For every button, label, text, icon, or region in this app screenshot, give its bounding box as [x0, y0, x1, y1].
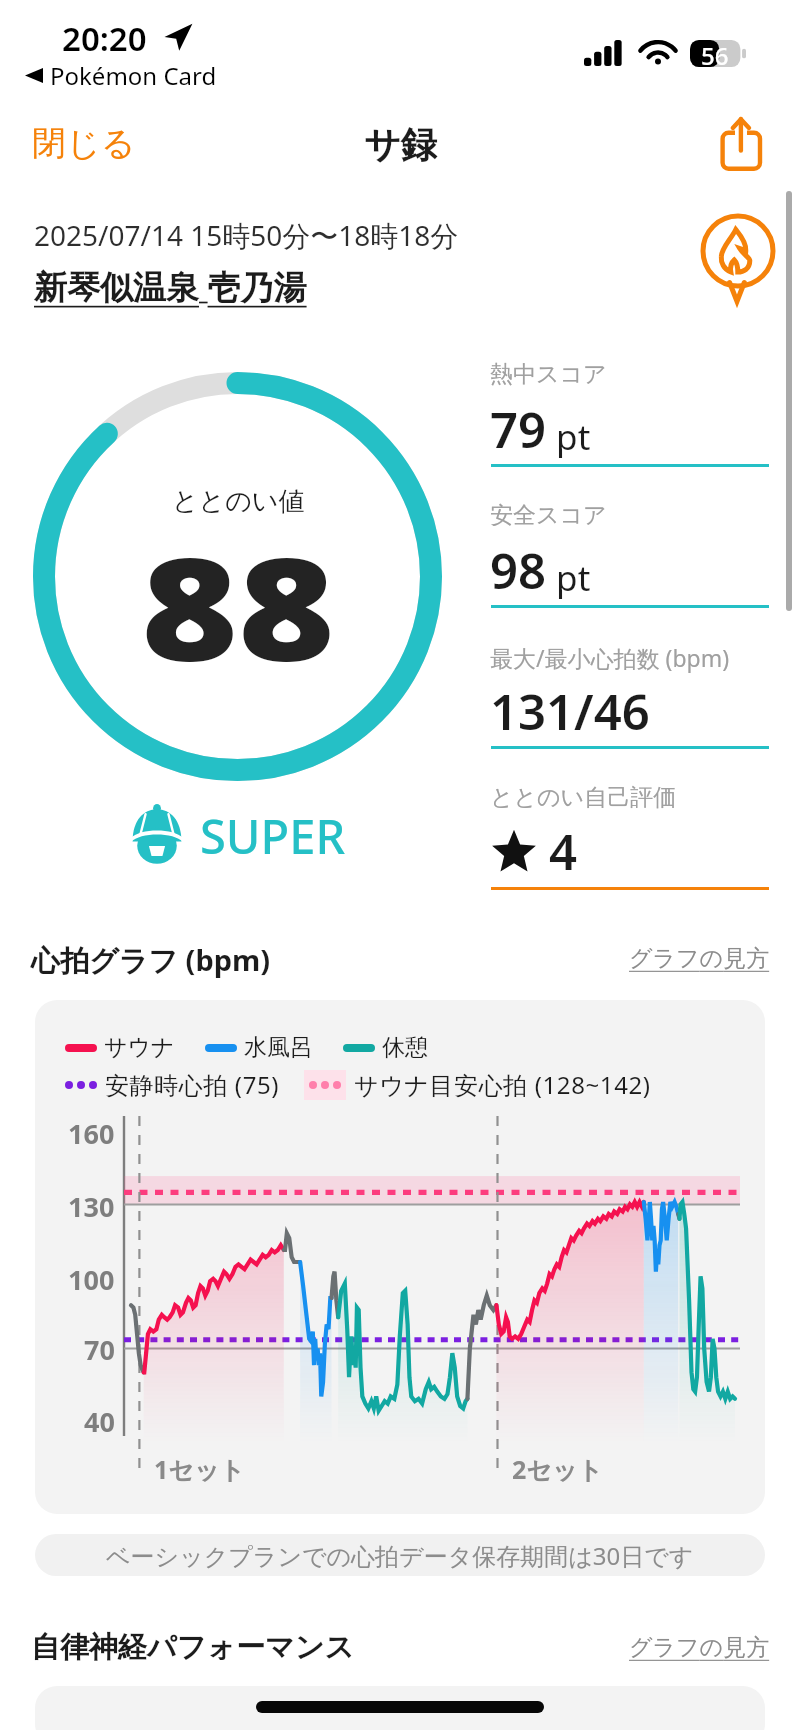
staticText: ととのい値	[172, 485, 305, 518]
staticText: 最大/最小心拍数 (bpm)	[490, 642, 730, 673]
staticText: 熱中スコア	[490, 360, 607, 389]
button[interactable]	[131, 803, 183, 865]
button[interactable]: 閉じる	[18, 112, 150, 175]
staticText: 安全スコア	[490, 501, 607, 530]
staticText: グラフの見方	[629, 944, 770, 973]
staticText: Pokémon Card	[50, 59, 217, 92]
button[interactable]: グラフの見方	[629, 1633, 770, 1662]
staticText: 56	[701, 39, 729, 66]
staticText: 2セット	[512, 1452, 604, 1486]
staticText: pt	[547, 554, 591, 602]
staticText: 4	[549, 818, 578, 885]
staticText: ベーシックプランでの心拍データ保存期間は30日です	[106, 1539, 694, 1572]
staticText: 休憩	[382, 1033, 428, 1062]
staticText: 心拍グラフ (bpm)	[31, 940, 271, 980]
staticText: 自律神経パフォーマンス	[31, 1629, 355, 1666]
staticText: 閉じる	[32, 122, 136, 165]
staticText: 160	[68, 1115, 115, 1152]
staticText: pt	[547, 413, 591, 461]
button[interactable]: Sauna heat badge	[694, 208, 782, 312]
staticText: 40	[84, 1403, 115, 1440]
staticText: ととのい自己評価	[490, 783, 677, 812]
staticText: サ録	[364, 122, 437, 167]
staticText: 20:20	[62, 16, 147, 61]
staticText: グラフの見方	[629, 1633, 770, 1662]
staticText: 1セット	[154, 1452, 246, 1486]
staticText: 131/46	[490, 678, 650, 745]
staticText: 88	[141, 508, 336, 703]
staticText: サウナ目安心拍 (128~142)	[354, 1068, 651, 1101]
staticText: 2025/07/14 15時50分〜18時18分	[34, 216, 459, 254]
staticText: 130	[68, 1188, 115, 1225]
staticText: 水風呂	[244, 1033, 313, 1062]
staticText: サウナ	[104, 1033, 175, 1062]
staticText: 70	[84, 1331, 115, 1368]
staticText: SUPER	[200, 804, 346, 868]
staticText: 100	[68, 1261, 115, 1298]
staticText: 新琴似温泉 壱乃湯	[34, 264, 307, 309]
staticText: 安静時心拍 (75)	[105, 1068, 280, 1101]
button[interactable]: グラフの見方	[629, 944, 770, 973]
button[interactable]: 新琴似温泉 壱乃湯	[34, 264, 307, 309]
button[interactable]: Share	[712, 112, 768, 168]
staticText: 98	[490, 537, 547, 604]
staticText: 79	[490, 396, 547, 463]
